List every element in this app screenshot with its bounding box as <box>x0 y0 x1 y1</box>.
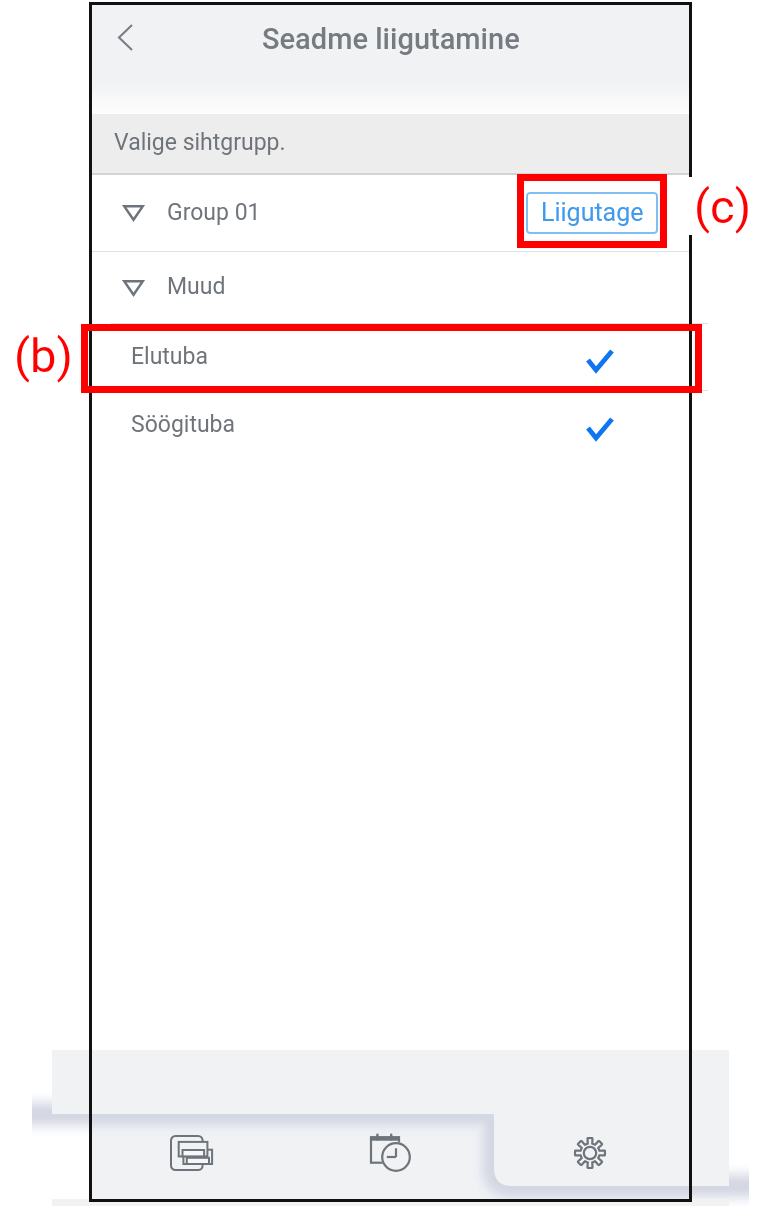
staticText: Seadme liigutamine <box>262 22 520 56</box>
button[interactable]: Group 01 <box>92 175 689 251</box>
button[interactable]: Devices <box>92 1098 291 1206</box>
staticText: (c) <box>694 179 752 234</box>
staticText: Group 01 <box>167 199 261 226</box>
staticText: Liigutage <box>541 198 644 227</box>
button[interactable]: Schedule <box>291 1098 490 1206</box>
staticText: (b) <box>14 328 73 383</box>
button[interactable]: Back <box>97 9 153 65</box>
staticText: Valige sihtgrupp. <box>114 129 286 156</box>
button[interactable]: Muud <box>92 252 689 323</box>
staticText: Muud <box>167 273 226 300</box>
button[interactable]: Liigutage <box>526 192 658 234</box>
button[interactable]: Settings <box>490 1098 689 1206</box>
staticText: Söögituba <box>131 411 236 438</box>
button[interactable]: Söögituba <box>92 391 689 460</box>
staticText: Elutuba <box>131 343 208 370</box>
button[interactable]: Elutuba <box>92 324 689 390</box>
